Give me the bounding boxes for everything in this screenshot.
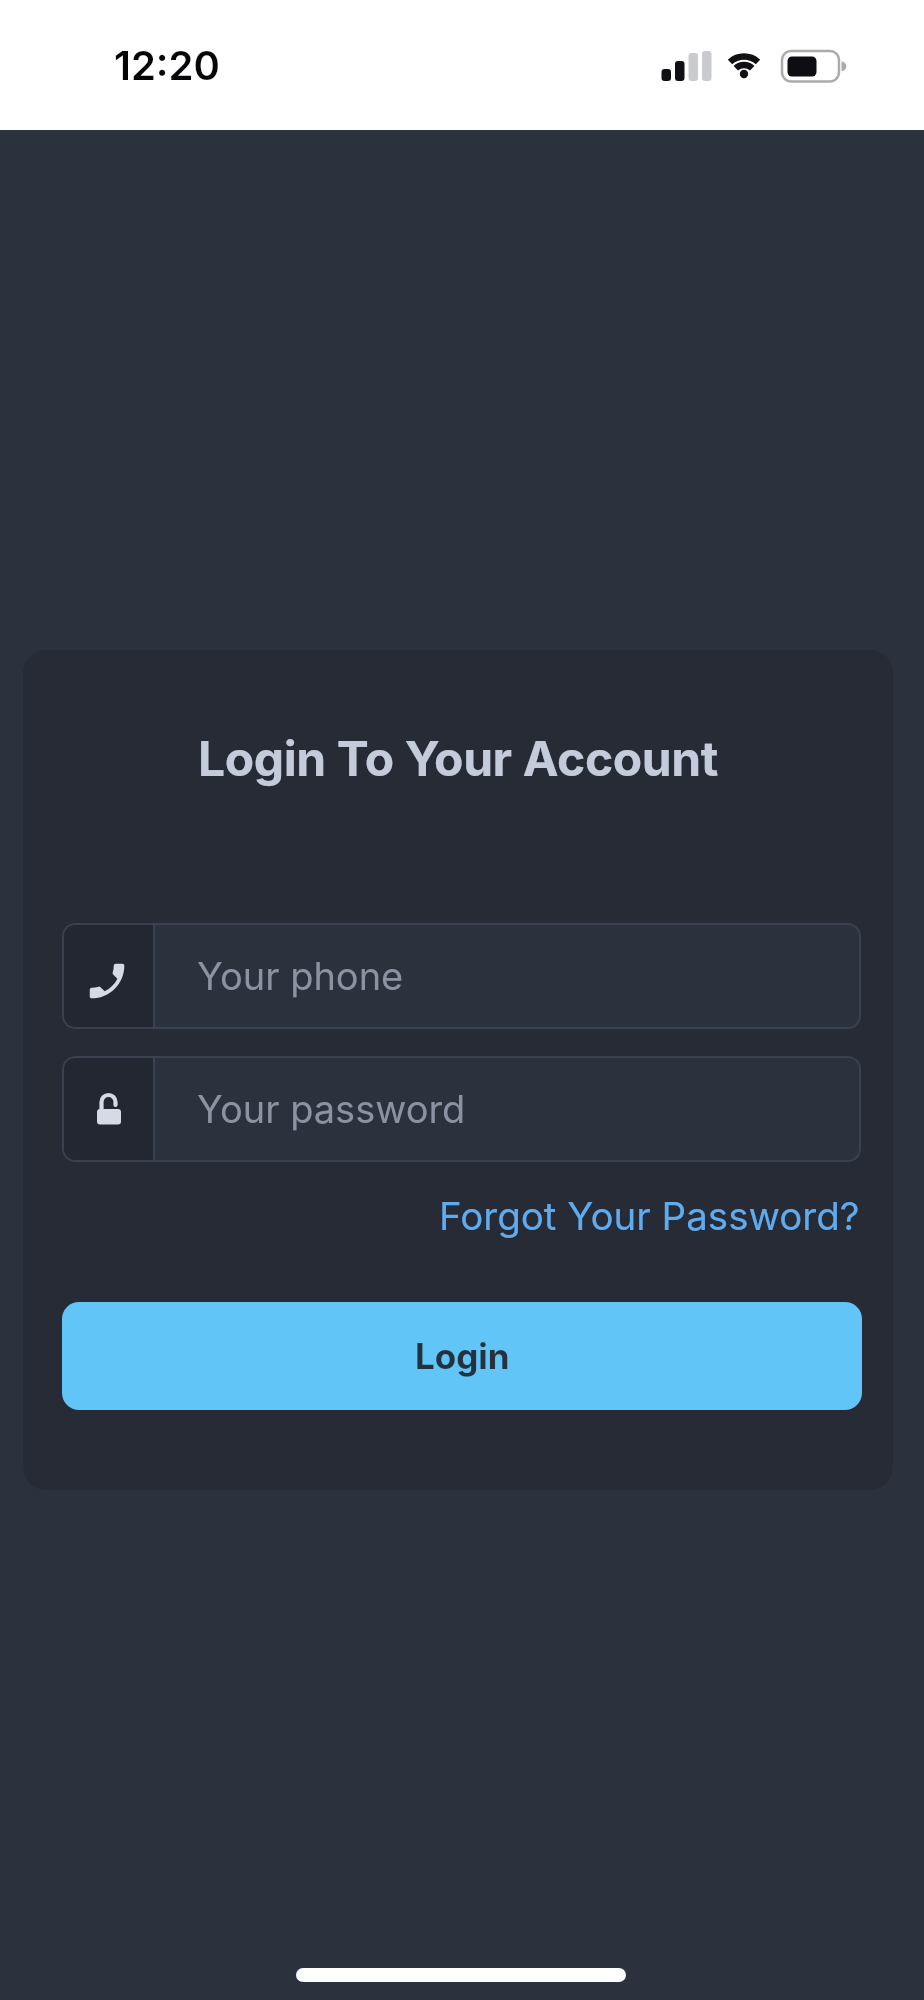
staticText: Your password — [197, 1086, 466, 1132]
staticText: Login — [415, 1335, 510, 1377]
button[interactable]: Login — [62, 1302, 862, 1410]
button[interactable]: Your password — [62, 1056, 861, 1162]
button[interactable]: Forgot Your Password? — [439, 1193, 860, 1240]
staticText: 12:20 — [114, 41, 220, 89]
staticText: Your phone — [197, 953, 404, 999]
button[interactable]: Your phone — [62, 923, 861, 1029]
staticText: Login To Your Account — [198, 729, 718, 787]
